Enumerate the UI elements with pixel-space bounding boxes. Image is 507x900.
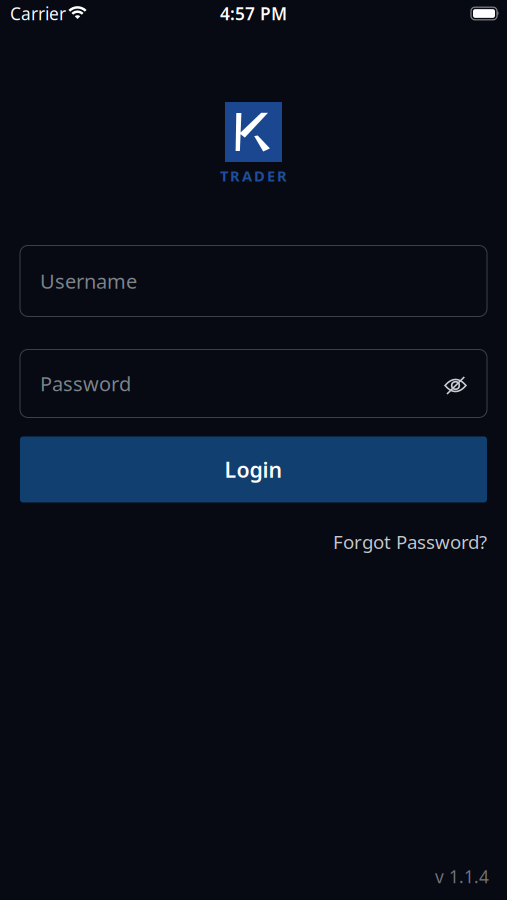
staticText: D <box>254 166 265 185</box>
staticText: T <box>220 166 228 185</box>
staticText: R <box>230 166 240 185</box>
button[interactable]: Login <box>20 436 487 502</box>
button[interactable]: Username <box>20 245 487 316</box>
staticText: Carrier <box>10 2 66 25</box>
staticText: 4:57 PM <box>220 2 287 25</box>
button[interactable]: Show password <box>444 377 467 393</box>
staticText: A <box>242 166 252 185</box>
staticText: E <box>267 166 275 185</box>
staticText: Login <box>224 455 282 484</box>
staticText: Username <box>40 268 137 294</box>
staticText: Forgot Password? <box>333 529 487 554</box>
button[interactable]: Password <box>20 349 487 417</box>
staticText: Password <box>40 370 131 397</box>
staticText: R <box>277 166 287 185</box>
staticText: v 1.1.4 <box>435 865 489 888</box>
button[interactable]: Forgot Password? <box>333 529 487 554</box>
